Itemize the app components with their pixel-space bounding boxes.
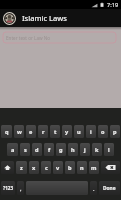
button[interactable]: ?123	[1, 181, 15, 195]
staticText: Islamic Laws	[22, 13, 67, 23]
staticText: n	[80, 164, 84, 172]
staticText: ,	[20, 185, 22, 192]
button[interactable]: v	[53, 161, 63, 174]
button[interactable]: u	[74, 125, 84, 138]
button[interactable]: w	[14, 125, 24, 138]
button[interactable]: z	[16, 161, 27, 174]
staticText: m	[91, 164, 97, 172]
staticText: t	[54, 128, 57, 136]
staticText: 7:19	[107, 1, 119, 9]
button[interactable]: Backspace	[101, 161, 120, 174]
staticText: w	[17, 128, 22, 136]
button[interactable]: k	[92, 143, 102, 156]
staticText: c	[45, 164, 48, 172]
staticText: u	[77, 128, 81, 136]
button[interactable]: .	[90, 181, 97, 195]
staticText: .	[93, 185, 95, 192]
staticText: ?123	[3, 185, 14, 191]
staticText: r	[42, 128, 45, 136]
staticText: q	[5, 128, 9, 136]
staticText: b	[68, 164, 72, 172]
button[interactable]: d	[32, 143, 42, 156]
staticText: f	[48, 146, 51, 154]
staticText: a	[11, 146, 15, 154]
staticText: d	[35, 146, 39, 154]
button[interactable]: s	[20, 143, 30, 156]
other: App icon	[3, 12, 16, 25]
button[interactable]: f	[44, 143, 54, 156]
button[interactable]: q	[1, 125, 12, 138]
staticText: v	[56, 164, 60, 172]
button[interactable]: Shift	[1, 161, 14, 174]
button[interactable]: m	[89, 161, 99, 174]
button[interactable]: Search field	[3, 32, 116, 43]
button[interactable]: Done	[99, 181, 120, 195]
button[interactable]: o	[98, 125, 108, 138]
button[interactable]: ,	[17, 181, 24, 195]
button[interactable]: e	[26, 125, 36, 138]
staticText: h	[71, 146, 75, 154]
button[interactable]: n	[77, 161, 87, 174]
button[interactable]: h	[68, 143, 78, 156]
staticText: Done	[103, 185, 116, 192]
button[interactable]: x	[29, 161, 39, 174]
button[interactable]: b	[65, 161, 75, 174]
button[interactable]: i	[86, 125, 96, 138]
staticText: j	[84, 146, 86, 154]
staticText: o	[101, 128, 105, 136]
staticText: e	[29, 128, 33, 136]
staticText: y	[65, 128, 69, 136]
button[interactable]: t	[50, 125, 60, 138]
button[interactable]: c	[41, 161, 51, 174]
staticText: g	[59, 146, 63, 154]
button[interactable]: y	[62, 125, 72, 138]
staticText: s	[24, 146, 27, 154]
staticText: k	[95, 146, 99, 154]
staticText: p	[113, 128, 117, 136]
button[interactable]: p	[110, 125, 120, 138]
button[interactable]: j	[80, 143, 90, 156]
staticText: x	[32, 164, 36, 172]
button[interactable]: a	[7, 143, 18, 156]
button[interactable]	[26, 181, 88, 195]
button[interactable]: g	[56, 143, 66, 156]
staticText: Enter text or Law No	[6, 35, 51, 41]
button[interactable]: l	[104, 143, 114, 156]
staticText: i	[90, 128, 92, 136]
button[interactable]: r	[38, 125, 48, 138]
staticText: z	[20, 164, 23, 172]
staticText: l	[108, 146, 110, 154]
